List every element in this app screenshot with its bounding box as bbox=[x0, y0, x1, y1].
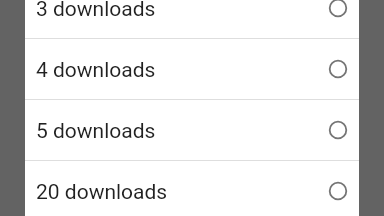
other: 5 downloads bbox=[323, 115, 353, 145]
button[interactable]: 4 downloads bbox=[25, 39, 359, 99]
other: 20 downloads bbox=[323, 176, 353, 206]
button[interactable]: 5 downloads bbox=[25, 100, 359, 160]
button[interactable]: 3 downloads bbox=[25, 0, 359, 38]
staticText: 20 downloads bbox=[36, 180, 168, 205]
other: 4 downloads bbox=[323, 54, 353, 84]
staticText: 3 downloads bbox=[36, 0, 156, 22]
other: 3 downloads bbox=[323, 0, 353, 23]
button[interactable]: 20 downloads bbox=[25, 161, 359, 216]
staticText: 4 downloads bbox=[36, 58, 156, 83]
staticText: 5 downloads bbox=[36, 119, 156, 144]
